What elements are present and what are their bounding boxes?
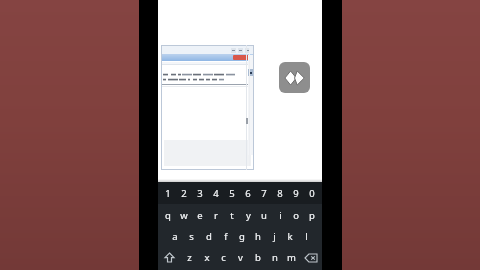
button[interactable]: l [298, 226, 314, 247]
button[interactable]: 1 [160, 182, 176, 204]
staticText: s [189, 230, 194, 243]
staticText: 6 [245, 187, 251, 200]
button[interactable]: z [181, 247, 198, 268]
button[interactable]: 4 [208, 182, 224, 204]
button[interactable]: 6 [240, 182, 256, 204]
button[interactable]: j [266, 226, 282, 247]
staticText: k [287, 230, 293, 243]
button[interactable]: q [160, 204, 176, 226]
staticText: j [273, 230, 276, 243]
staticText: 7 [261, 187, 267, 200]
staticText: x [204, 251, 210, 264]
staticText: 9 [293, 187, 299, 200]
button[interactable]: 7 [256, 182, 272, 204]
button[interactable]: Backspace [300, 247, 322, 268]
button[interactable]: Shift [158, 247, 181, 268]
staticText: h [255, 230, 261, 243]
button[interactable]: y [240, 204, 256, 226]
staticText: u [261, 209, 267, 222]
button[interactable]: 5 [224, 182, 240, 204]
button[interactable]: i [272, 204, 288, 226]
button[interactable]: 8 [272, 182, 288, 204]
staticText: q [165, 209, 171, 222]
staticText: g [239, 230, 245, 243]
staticText: w [180, 209, 188, 222]
button[interactable]: w [176, 204, 192, 226]
button[interactable]: b [249, 247, 266, 268]
button[interactable]: 9 [288, 182, 304, 204]
staticText: i [279, 209, 282, 222]
button[interactable]: v [232, 247, 249, 268]
staticText: m [287, 251, 296, 264]
button[interactable]: e [192, 204, 208, 226]
button[interactable]: p [304, 204, 320, 226]
staticText: e [197, 209, 203, 222]
staticText: 1 [165, 187, 171, 200]
staticText: l [305, 230, 308, 243]
staticText: 8 [277, 187, 283, 200]
button[interactable]: x [198, 247, 215, 268]
button[interactable]: s [183, 226, 200, 247]
staticText: 3 [197, 187, 203, 200]
button[interactable]: Next [279, 62, 310, 93]
button[interactable]: n [266, 247, 283, 268]
button[interactable]: h [250, 226, 266, 247]
staticText: c [221, 251, 226, 264]
staticText: f [224, 230, 228, 243]
staticText: 0 [309, 187, 315, 200]
staticText: z [187, 251, 192, 264]
staticText: a [172, 230, 178, 243]
staticText: n [272, 251, 278, 264]
button[interactable]: f [217, 226, 234, 247]
button[interactable]: c [215, 247, 232, 268]
staticText: 5 [229, 187, 235, 200]
button[interactable]: o [288, 204, 304, 226]
staticText: t [230, 209, 234, 222]
button[interactable]: m [283, 247, 300, 268]
button[interactable]: g [234, 226, 250, 247]
button[interactable]: u [256, 204, 272, 226]
staticText: y [246, 209, 251, 222]
staticText: 2 [181, 187, 187, 200]
button[interactable]: a [166, 226, 183, 247]
staticText: v [238, 251, 243, 264]
button[interactable]: d [200, 226, 217, 247]
staticText: b [255, 251, 261, 264]
staticText: r [214, 209, 218, 222]
staticText: d [206, 230, 212, 243]
button[interactable]: 0 [304, 182, 320, 204]
button[interactable]: r [208, 204, 224, 226]
button[interactable]: k [282, 226, 298, 247]
button[interactable]: 3 [192, 182, 208, 204]
button[interactable]: 2 [176, 182, 192, 204]
button[interactable]: t [224, 204, 240, 226]
staticText: 4 [213, 187, 219, 200]
staticText: o [293, 209, 299, 222]
staticText: p [309, 209, 315, 222]
button[interactable] [233, 55, 250, 60]
